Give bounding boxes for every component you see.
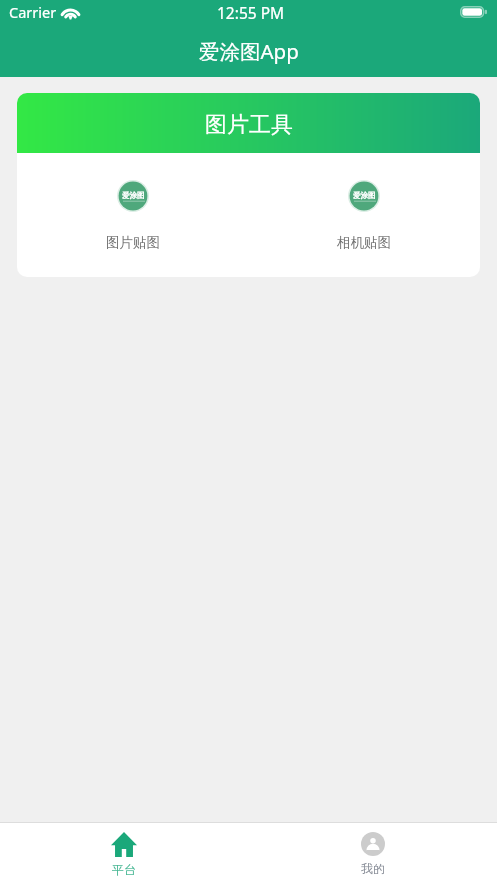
staticText: 爱涂图App: [199, 37, 299, 65]
staticText: 图片工具: [205, 111, 293, 139]
staticText: 爱涂图: [353, 191, 376, 200]
staticText: 相机贴图: [337, 234, 391, 251]
button[interactable]: 爱涂图: [248, 153, 480, 277]
button[interactable]: 我的: [248, 823, 497, 883]
staticText: 爱涂图: [122, 191, 145, 200]
staticText: 我的: [361, 861, 385, 876]
button[interactable]: 平台: [0, 823, 248, 883]
other: Battery full: [460, 6, 487, 18]
staticText: Carrier: [9, 2, 57, 22]
staticText: 平台: [112, 862, 136, 877]
staticText: 12:55 PM: [217, 2, 285, 23]
staticText: 图片贴图: [106, 234, 160, 251]
button[interactable]: 爱涂图: [17, 153, 248, 277]
other: Wi-Fi signal: [61, 5, 80, 19]
